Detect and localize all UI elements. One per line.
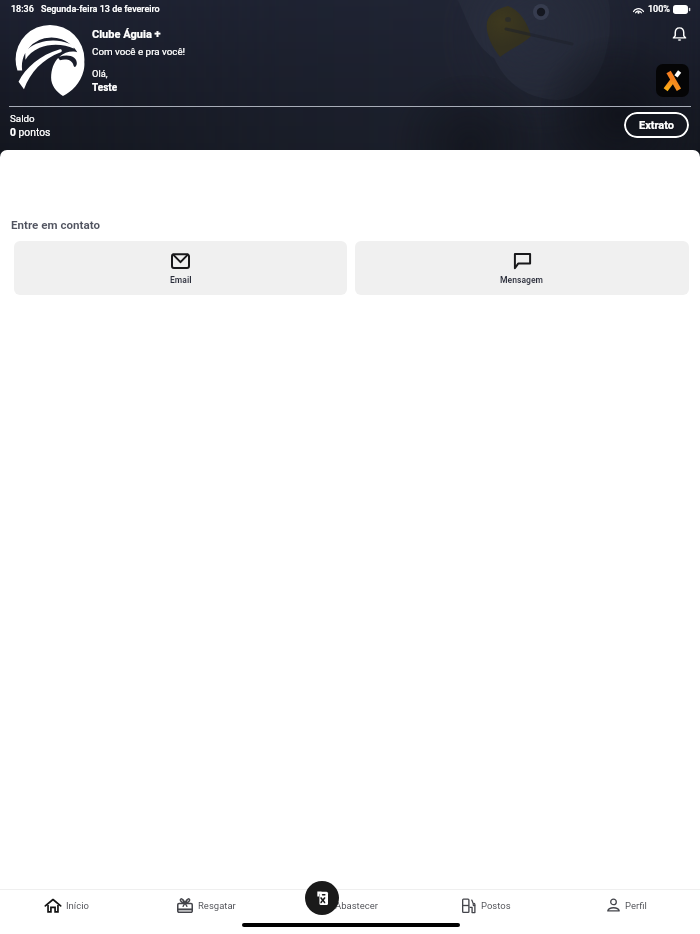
button[interactable]: Mensagem (355, 241, 689, 295)
staticText: 100% (648, 4, 670, 15)
staticText: Clube Águia + (92, 28, 161, 41)
button[interactable]: Postos (420, 890, 560, 920)
button[interactable]: Resgatar (140, 890, 280, 920)
staticText: Início (66, 900, 89, 911)
staticText: 0 (10, 126, 16, 138)
staticText: Com você e pra você! (92, 46, 186, 57)
staticText: pontos (16, 126, 51, 138)
button[interactable]: Aplicativo X (656, 64, 689, 97)
staticText: Resgatar (198, 900, 236, 911)
staticText: Entre em contato (11, 218, 100, 232)
staticText: Extrato (639, 119, 675, 132)
button[interactable]: Abastecer (280, 890, 420, 920)
staticText: Saldo (10, 113, 35, 124)
button[interactable]: Abastecer (305, 881, 339, 915)
button[interactable]: Extrato (624, 112, 689, 138)
staticText: Abastecer (335, 900, 378, 911)
staticText: 18:36 (11, 4, 34, 15)
staticText: Segunda-feira 13 de fevereiro (41, 4, 160, 15)
button[interactable]: Notificações (665, 20, 693, 48)
button[interactable]: Perfil (560, 890, 700, 920)
staticText: Mensagem (500, 275, 544, 285)
button[interactable]: Início (0, 890, 140, 920)
button[interactable]: Email (14, 241, 347, 295)
staticText: Postos (481, 900, 511, 911)
staticText: Email (170, 275, 192, 285)
staticText: Perfil (625, 900, 647, 911)
staticText: Olá, (92, 68, 108, 79)
staticText: Teste (92, 82, 118, 94)
